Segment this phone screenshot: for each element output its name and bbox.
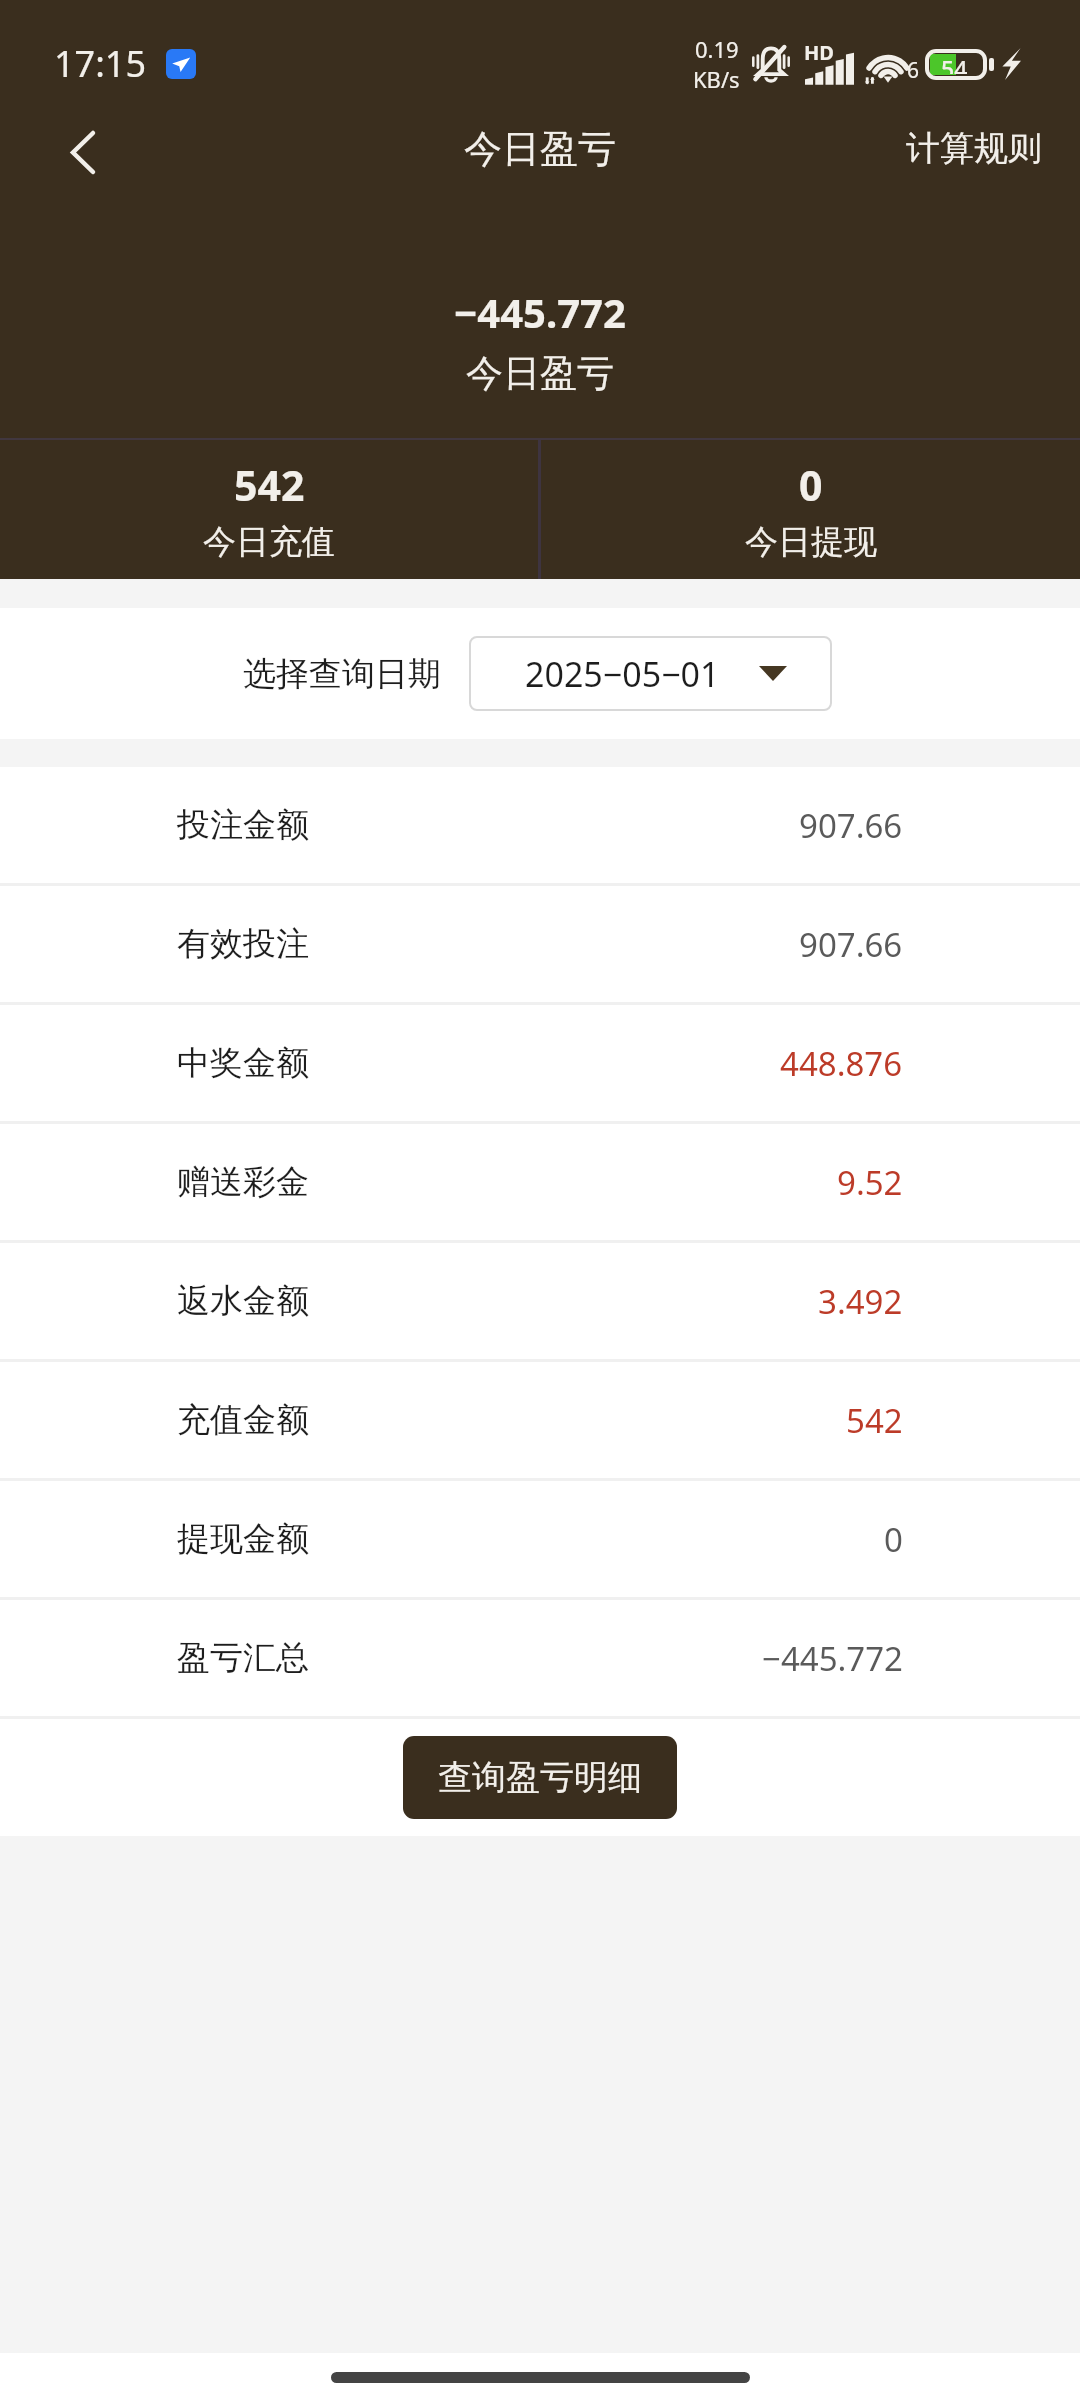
staticText: 6 [907, 56, 920, 85]
button[interactable]: 中奖金额 [0, 1005, 1080, 1121]
button[interactable]: 计算规则 [902, 115, 1046, 182]
staticText: 有效投注 [177, 923, 309, 965]
staticText: 今日充值 [203, 521, 335, 563]
staticText: 赠送彩金 [177, 1161, 309, 1203]
button[interactable]: 0 [541, 440, 1080, 579]
button[interactable]: 返水金额 [0, 1243, 1080, 1359]
staticText: 2025−05−01 [525, 651, 720, 697]
staticText: 907.66 [799, 922, 903, 967]
staticText: 0.19 [695, 34, 739, 64]
staticText: 中奖金额 [177, 1042, 309, 1084]
button[interactable]: 有效投注 [0, 886, 1080, 1002]
staticText: HD [804, 39, 834, 66]
staticText: 3.492 [818, 1279, 903, 1324]
staticText: 投注金额 [177, 804, 309, 846]
staticText: 0 [884, 1517, 903, 1562]
staticText: −445.772 [762, 1636, 903, 1681]
staticText: 448.876 [780, 1041, 903, 1086]
staticText: 今日盈亏 [464, 125, 616, 173]
button[interactable]: 盈亏汇总 [0, 1600, 1080, 1716]
staticText: 盈亏汇总 [177, 1637, 309, 1679]
staticText: KB/s [693, 64, 740, 94]
staticText: 9.52 [837, 1160, 903, 1205]
staticText: 提现金额 [177, 1518, 309, 1560]
staticText: 返水金额 [177, 1280, 309, 1322]
staticText: 查询盈亏明细 [438, 1756, 642, 1799]
staticText: 17:15 [54, 39, 147, 88]
staticText: 今日盈亏 [466, 350, 614, 397]
button[interactable]: 赠送彩金 [0, 1124, 1080, 1240]
button[interactable]: 投注金额 [0, 767, 1080, 883]
button[interactable]: 充值金额 [0, 1362, 1080, 1478]
staticText: 542 [234, 457, 305, 513]
staticText: 0 [799, 457, 823, 513]
staticText: 54 [941, 53, 968, 74]
button[interactable]: 542 [0, 440, 538, 579]
staticText: 今日提现 [745, 521, 877, 563]
staticText: 充值金额 [177, 1399, 309, 1441]
button[interactable]: 查询盈亏明细 [403, 1736, 677, 1819]
button[interactable]: Back [38, 107, 128, 197]
staticText: −445.772 [454, 285, 626, 339]
staticText: 542 [846, 1398, 903, 1443]
button[interactable]: 2025−05−01 [469, 636, 832, 711]
staticText: 907.66 [799, 803, 903, 848]
staticText: 选择查询日期 [243, 653, 441, 695]
staticText: 计算规则 [906, 127, 1042, 170]
button[interactable]: 提现金额 [0, 1481, 1080, 1597]
